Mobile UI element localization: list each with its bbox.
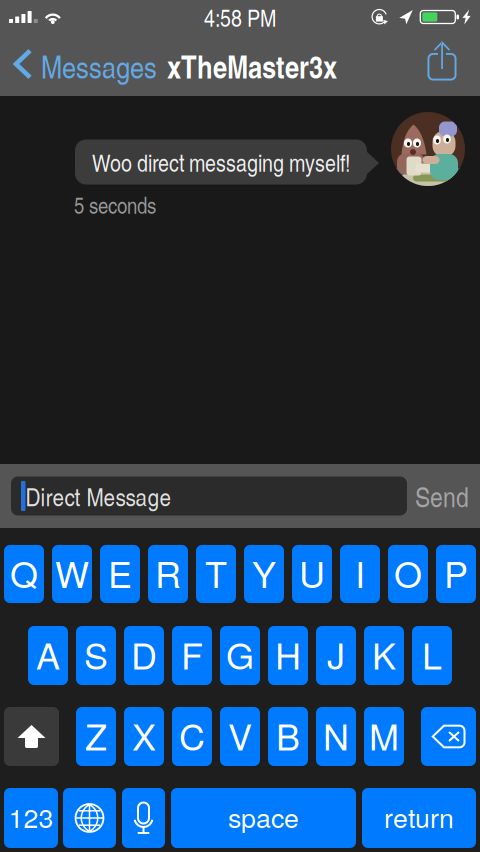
staticText: B (276, 709, 300, 761)
button[interactable]: Share (413, 36, 480, 96)
staticText: return (384, 797, 454, 836)
button[interactable]: N (316, 707, 356, 766)
staticText: L (422, 628, 442, 680)
button[interactable]: X (124, 707, 164, 766)
button[interactable]: P (436, 545, 476, 603)
button[interactable]: L (412, 626, 452, 685)
staticText: space (228, 797, 299, 836)
staticText: Direct Message (25, 479, 171, 513)
staticText: V (228, 709, 252, 761)
button[interactable]: M (364, 707, 404, 766)
staticText: T (205, 547, 227, 598)
staticText: M (369, 709, 399, 761)
button[interactable]: Shift (4, 707, 59, 766)
staticText: D (131, 628, 157, 680)
staticText: 4:58 PM (204, 0, 276, 33)
staticText: Send (415, 477, 469, 515)
button[interactable]: K (364, 626, 404, 685)
button[interactable]: Y (244, 545, 284, 603)
staticText: P (444, 547, 468, 598)
staticText: X (132, 709, 156, 761)
button[interactable]: B (268, 707, 308, 766)
staticText: 5 seconds (74, 189, 156, 220)
button[interactable]: D (124, 626, 164, 685)
staticText: S (84, 628, 108, 680)
button[interactable]: G (220, 626, 260, 685)
staticText: I (355, 547, 365, 598)
button[interactable]: Dictate (122, 788, 165, 848)
staticText: Q (10, 547, 38, 598)
button[interactable]: C (172, 707, 212, 766)
button[interactable]: Direct Message (11, 476, 407, 515)
button[interactable]: U (292, 545, 332, 603)
button[interactable]: Messages (0, 36, 163, 96)
staticText: H (275, 628, 301, 680)
staticText: J (327, 628, 345, 680)
staticText: E (108, 547, 132, 598)
staticText: Messages (41, 45, 157, 87)
button[interactable]: Send (415, 477, 469, 515)
button[interactable]: Delete (421, 707, 476, 766)
staticText: R (155, 547, 181, 598)
staticText: Z (85, 709, 107, 761)
staticText: N (323, 709, 349, 761)
button[interactable]: S (76, 626, 116, 685)
button[interactable]: Next keyboard (63, 788, 116, 848)
staticText: F (181, 628, 203, 680)
button[interactable]: 123 (4, 788, 58, 848)
button[interactable]: T (196, 545, 236, 603)
button[interactable]: R (148, 545, 188, 603)
button[interactable]: return (362, 788, 476, 848)
button[interactable]: J (316, 626, 356, 685)
staticText: K (372, 628, 396, 680)
staticText: O (394, 547, 422, 598)
button[interactable]: W (52, 545, 92, 603)
button[interactable]: I (340, 545, 380, 603)
button[interactable]: Z (76, 707, 116, 766)
button[interactable]: A (28, 626, 68, 685)
button[interactable]: H (268, 626, 308, 685)
button[interactable]: V (220, 707, 260, 766)
staticText: G (226, 628, 254, 680)
staticText: Y (252, 547, 276, 598)
staticText: xTheMaster3x (167, 44, 337, 88)
staticText: A (36, 628, 60, 680)
button[interactable]: Q (4, 545, 44, 603)
staticText: 123 (8, 797, 53, 836)
button[interactable]: F (172, 626, 212, 685)
staticText: W (55, 547, 89, 598)
staticText: C (179, 709, 205, 761)
staticText: Woo direct messaging myself! (92, 145, 350, 178)
button[interactable]: O (388, 545, 428, 603)
button[interactable]: E (100, 545, 140, 603)
button[interactable]: space (171, 788, 356, 848)
staticText: U (299, 547, 325, 598)
